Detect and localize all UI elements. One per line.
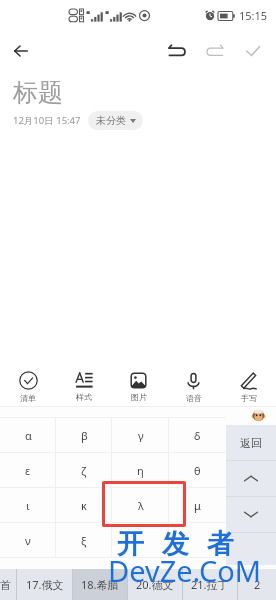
staticText: 样式 bbox=[76, 392, 92, 402]
button[interactable]: ι bbox=[0, 488, 56, 522]
staticText: β bbox=[81, 428, 88, 443]
button[interactable]: ν bbox=[0, 523, 56, 557]
button[interactable]: Page down bbox=[226, 497, 276, 532]
staticText: ι bbox=[26, 498, 30, 513]
button[interactable]: θ bbox=[169, 453, 226, 487]
button[interactable]: 21.拉丁 bbox=[183, 569, 237, 600]
staticText: 未分类 bbox=[96, 114, 126, 127]
staticText: ξ bbox=[81, 533, 87, 548]
staticText: DevZe.CoM bbox=[108, 551, 262, 590]
button[interactable]: γ bbox=[112, 418, 169, 452]
staticText: α bbox=[25, 428, 32, 443]
button[interactable]: α bbox=[0, 418, 56, 452]
button[interactable]: κ bbox=[56, 488, 112, 522]
staticText: 18.希腊 bbox=[81, 577, 119, 592]
button[interactable]: 返回 bbox=[226, 425, 276, 460]
button[interactable]: λ bbox=[112, 488, 169, 522]
staticText: 20.德文 bbox=[136, 577, 174, 592]
button[interactable]: 未分类 bbox=[88, 111, 143, 130]
button[interactable]: ε bbox=[0, 453, 56, 487]
staticText: ε bbox=[25, 463, 31, 478]
button[interactable]: μ bbox=[169, 488, 226, 522]
button[interactable]: 17.俄文 bbox=[17, 569, 72, 600]
button[interactable]: Back bbox=[0, 30, 42, 72]
button[interactable]: 手写 bbox=[221, 369, 276, 405]
staticText: μ bbox=[194, 498, 201, 513]
button[interactable]: 语音 bbox=[166, 369, 221, 405]
button[interactable]: 清单 bbox=[0, 369, 56, 405]
staticText: γ bbox=[138, 428, 144, 443]
button[interactable]: ξ bbox=[56, 523, 112, 557]
staticText: ν bbox=[25, 533, 31, 548]
staticText: 开 发 者 bbox=[117, 524, 240, 561]
staticText: 手写 bbox=[241, 393, 257, 403]
button[interactable]: Undo bbox=[158, 32, 196, 70]
staticText: 21.拉丁 bbox=[191, 577, 229, 592]
staticText: 图片 bbox=[131, 392, 147, 402]
staticText: 2 bbox=[254, 577, 261, 592]
button[interactable]: Done bbox=[234, 32, 272, 70]
staticText: δ bbox=[194, 428, 201, 443]
button[interactable]: 图片 bbox=[111, 369, 166, 405]
button[interactable]: Page up bbox=[226, 461, 276, 496]
staticText: 返回 bbox=[240, 436, 262, 450]
button[interactable]: Redo bbox=[196, 32, 234, 70]
staticText: 17.俄文 bbox=[26, 577, 64, 592]
staticText: 语音 bbox=[186, 393, 202, 403]
button[interactable] bbox=[112, 523, 169, 557]
staticText: θ bbox=[194, 463, 201, 478]
button[interactable]: ζ bbox=[56, 453, 112, 487]
staticText: 首 bbox=[0, 578, 11, 592]
staticText: ζ bbox=[81, 463, 87, 478]
button[interactable]: β bbox=[56, 418, 112, 452]
button[interactable]: Emoji bbox=[252, 409, 265, 422]
staticText: η bbox=[137, 463, 144, 478]
button[interactable]: 样式 bbox=[56, 369, 111, 405]
staticText: 15:15 bbox=[239, 8, 268, 23]
staticText: κ bbox=[81, 498, 87, 513]
staticText: 清单 bbox=[20, 393, 36, 403]
button[interactable]: 首 bbox=[0, 569, 16, 600]
button[interactable]: 18.希腊 bbox=[73, 569, 127, 600]
staticText: λ bbox=[138, 498, 144, 513]
button[interactable] bbox=[169, 523, 226, 557]
button[interactable]: 20.德文 bbox=[128, 569, 182, 600]
button[interactable]: δ bbox=[169, 418, 226, 452]
button[interactable]: η bbox=[112, 453, 169, 487]
staticText: 12月10日 15:47 bbox=[13, 114, 81, 127]
staticText: 标题 bbox=[13, 77, 63, 108]
button[interactable]: 2 bbox=[238, 569, 276, 600]
